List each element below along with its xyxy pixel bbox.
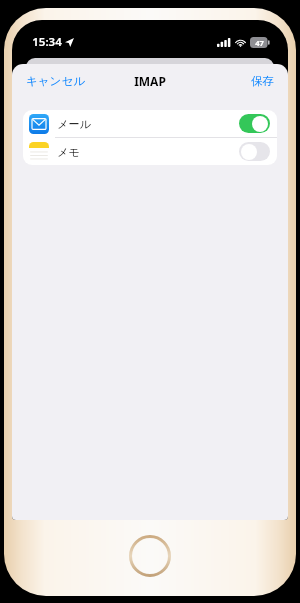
button[interactable]: キャンセル — [12, 70, 99, 92]
staticText: メール — [57, 117, 91, 131]
button[interactable]: Off — [239, 142, 270, 161]
staticText: 保存 — [251, 74, 274, 88]
button[interactable]: メール — [23, 110, 277, 138]
staticText: IMAP — [134, 73, 166, 89]
button[interactable]: Home — [128, 534, 172, 578]
staticText: キャンセル — [26, 74, 85, 88]
button[interactable]: On — [239, 114, 270, 133]
staticText: 47 — [255, 38, 264, 48]
staticText: メモ — [57, 145, 80, 159]
button[interactable]: 保存 — [237, 70, 288, 92]
button[interactable]: メモ — [23, 138, 277, 165]
staticText: 15:34 — [32, 34, 62, 50]
